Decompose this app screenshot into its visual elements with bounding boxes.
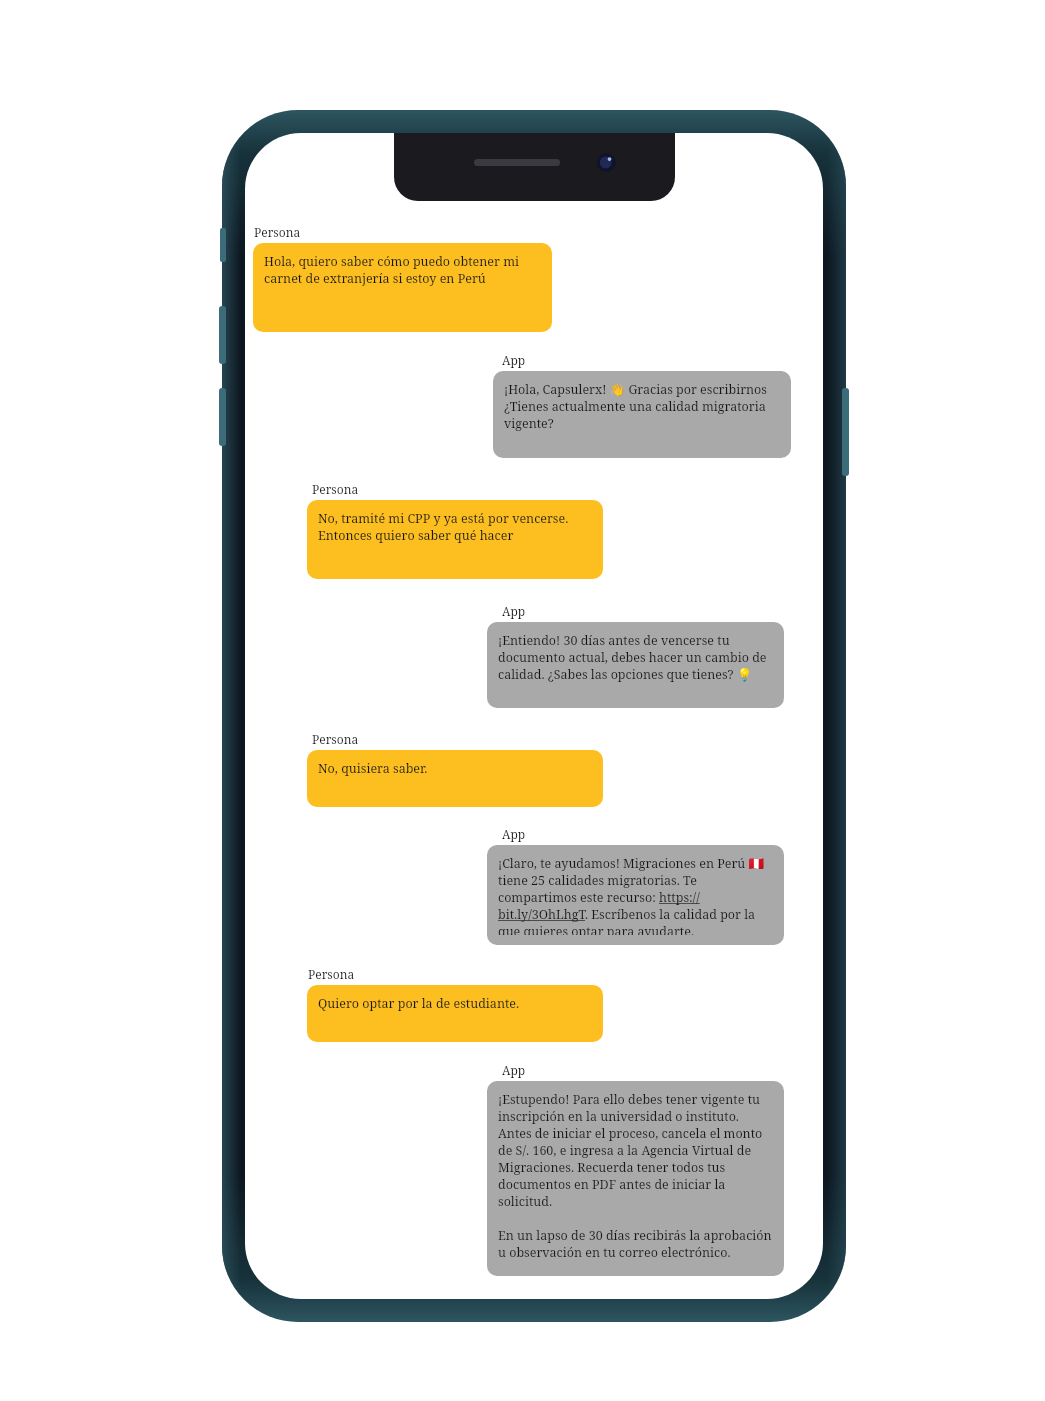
staticText: Hola, quiero saber cómo puedo obtener mi… xyxy=(264,253,519,287)
staticText: Persona xyxy=(254,224,301,240)
button[interactable]: Hola, quiero saber cómo puedo obtener mi… xyxy=(253,243,552,332)
button[interactable]: No, quisiera saber. xyxy=(307,750,603,807)
staticText: ¡Claro, te ayudamos! Migraciones en Perú… xyxy=(498,855,765,935)
button[interactable]: No, tramité mi CPP y ya está por vencers… xyxy=(307,500,603,579)
button[interactable]: ¡Hola, Capsulerx! 👋 Gracias por escribir… xyxy=(493,371,791,458)
other: Volume down xyxy=(219,388,226,446)
staticText: App xyxy=(502,603,526,619)
staticText: No, quisiera saber. xyxy=(318,760,428,777)
button[interactable]: ¡Entiendo! 30 días antes de vencerse tu … xyxy=(487,622,784,708)
staticText: Persona xyxy=(308,966,355,982)
other: Power xyxy=(842,388,849,476)
button[interactable]: ¡Claro, te ayudamos! Migraciones en Perú… xyxy=(487,845,784,945)
staticText: App xyxy=(502,1062,526,1078)
staticText: ¡Entiendo! 30 días antes de vencerse tu … xyxy=(498,632,767,683)
staticText: No, tramité mi CPP y ya está por vencers… xyxy=(318,510,569,544)
staticText: Persona xyxy=(312,481,359,497)
staticText: Quiero optar por la de estudiante. xyxy=(318,995,520,1012)
other: Mute switch xyxy=(220,228,226,262)
staticText: App xyxy=(502,826,526,842)
staticText: Persona xyxy=(312,731,359,747)
staticText: ¡Estupendo! Para ello debes tener vigent… xyxy=(498,1091,772,1261)
staticText: ¡Hola, Capsulerx! 👋 Gracias por escribir… xyxy=(504,381,767,432)
button[interactable]: Quiero optar por la de estudiante. xyxy=(307,985,603,1042)
button[interactable]: ¡Estupendo! Para ello debes tener vigent… xyxy=(487,1081,784,1276)
staticText: App xyxy=(502,352,526,368)
other: Volume up xyxy=(219,306,226,364)
